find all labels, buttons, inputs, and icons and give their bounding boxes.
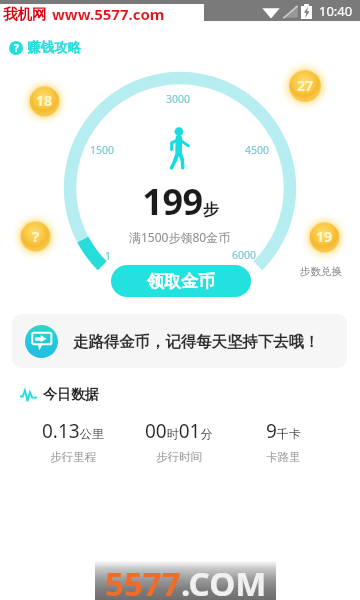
staticText: 1500 (90, 143, 115, 157)
button[interactable]: 领取金币 (111, 265, 251, 297)
staticText: 步行时间 (156, 450, 202, 464)
staticText: 步行里程 (50, 450, 96, 464)
button[interactable]: 走路得金币，记得每天坚持下去哦！ (12, 314, 347, 368)
staticText: 领取金币 (147, 271, 215, 292)
staticText: 今日数据 (43, 386, 99, 404)
button[interactable]: Coin 19 (301, 214, 348, 261)
staticText: 27 (297, 76, 314, 95)
staticText: 9千卡 (266, 418, 301, 444)
staticText: .COM (181, 561, 267, 600)
staticText: 10:40 (319, 2, 353, 20)
staticText: 0.13公里 (42, 418, 104, 444)
staticText: 1 (105, 249, 112, 263)
staticText: 3000 (166, 92, 191, 106)
staticText: 4500 (245, 143, 270, 157)
staticText: 满1500步领80金币 (129, 229, 231, 245)
staticText: 18 (36, 91, 53, 110)
staticText: 199步 (142, 177, 219, 226)
staticText: 00时01分 (145, 418, 213, 444)
button[interactable]: Coin 27 (280, 61, 330, 111)
staticText: ? (14, 41, 19, 55)
staticText: 赚钱攻略 (27, 39, 81, 56)
staticText: 5577 (105, 561, 181, 600)
staticText: 19 (316, 227, 333, 246)
staticText: 卡路里 (266, 450, 301, 464)
staticText: ? (32, 226, 40, 246)
staticText: 走路得金币，记得每天坚持下去哦！ (73, 332, 320, 351)
button[interactable]: ? (7, 37, 83, 58)
button[interactable]: Coin 18 (21, 78, 68, 125)
staticText: 6000 (232, 248, 257, 262)
button[interactable]: Coin ? (12, 213, 59, 260)
staticText: 步数兑换 (300, 265, 342, 278)
staticText: www.5577.com (52, 4, 165, 24)
staticText: 我机网 (3, 5, 47, 23)
